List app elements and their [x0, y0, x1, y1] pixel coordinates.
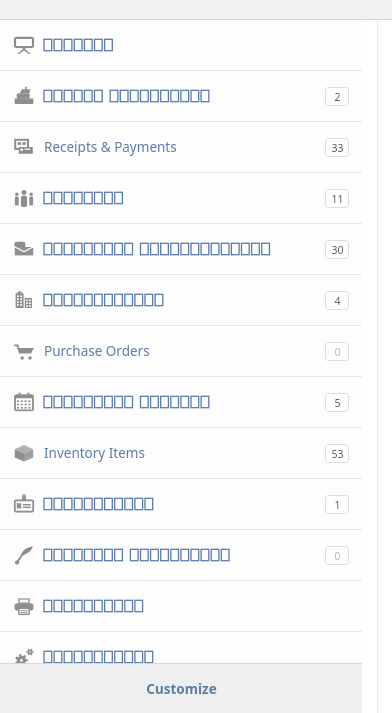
button[interactable]: Settings: [0, 632, 362, 682]
button[interactable]: Suppliers: [0, 275, 362, 325]
staticText: 0: [334, 345, 341, 359]
button[interactable]: Purchase Orders: [0, 326, 362, 376]
staticText: Customize: [146, 680, 217, 698]
staticText: Receipts & Payments: [44, 138, 177, 156]
staticText: 5: [334, 396, 341, 410]
button[interactable]: Customers: [0, 173, 362, 223]
staticText: 53: [331, 447, 344, 461]
staticText: 33: [331, 141, 344, 155]
button[interactable]: Journal Entries: [0, 530, 362, 580]
button[interactable]: Billable Time: [0, 377, 362, 427]
staticText: 2: [334, 90, 341, 104]
button[interactable]: Customize: [0, 664, 362, 713]
button[interactable]: Sales Invoices: [0, 71, 362, 121]
button[interactable]: Receipts and Payments: [0, 122, 362, 172]
button[interactable]: Inventory Items: [0, 428, 362, 478]
staticText: 1: [334, 498, 341, 512]
button[interactable]: Employees: [0, 479, 362, 529]
staticText: Inventory Items: [44, 444, 145, 462]
staticText: 4: [334, 294, 341, 308]
staticText: 0: [334, 549, 341, 563]
button[interactable]: Dashboard: [0, 20, 362, 70]
button[interactable]: Reports: [0, 581, 362, 631]
staticText: 30: [331, 243, 344, 257]
staticText: Purchase Orders: [44, 342, 150, 360]
button[interactable]: Messages: [0, 224, 362, 274]
staticText: 11: [331, 192, 344, 206]
